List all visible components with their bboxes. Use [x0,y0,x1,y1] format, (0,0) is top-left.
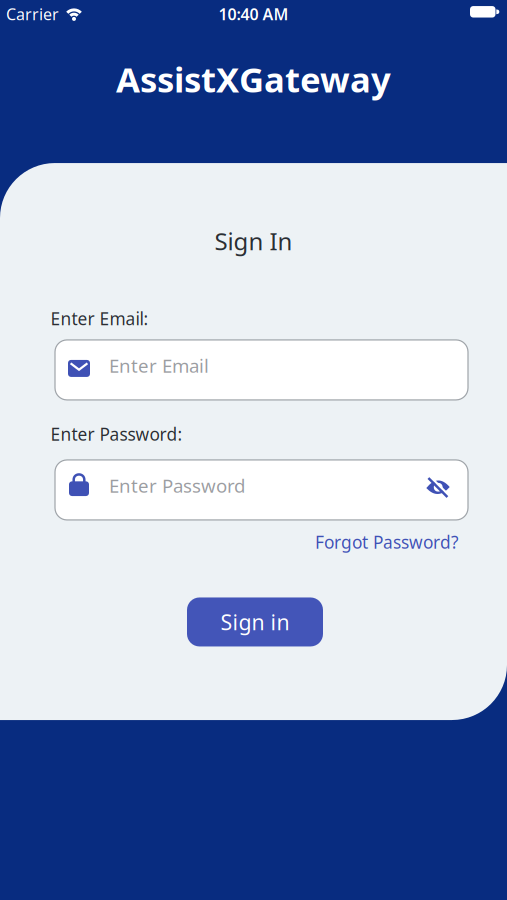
staticText: Enter Password [109,473,245,498]
staticText: Carrier [6,3,59,25]
staticText: AssistXGateway [116,56,391,102]
button[interactable]: Forgot Password? [315,530,459,553]
staticText: Enter Email: [50,307,148,330]
staticText: Enter Password: [50,422,182,445]
button[interactable]: Enter Email [55,340,468,400]
staticText: 10:40 AM [218,3,288,25]
button[interactable]: Sign in [193,597,329,646]
staticText: Enter Email [109,353,209,378]
staticText: Sign in [220,608,289,636]
staticText: Sign In [214,225,292,257]
button[interactable]: Show password [426,482,450,498]
staticText: Forgot Password? [315,530,459,553]
button[interactable]: Enter Password [55,460,468,520]
